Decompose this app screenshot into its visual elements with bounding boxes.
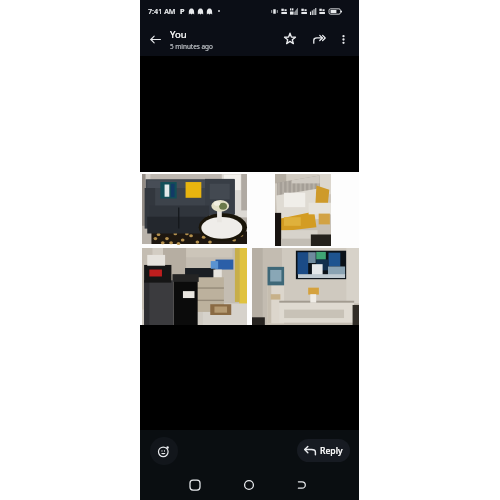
button[interactable]: Star	[280, 29, 300, 49]
staticText: P	[180, 6, 185, 16]
button[interactable]: Back	[292, 475, 312, 495]
button[interactable]	[140, 172, 359, 325]
button[interactable]: More options	[333, 29, 353, 49]
staticText: You	[170, 28, 187, 41]
button[interactable]: Reply	[297, 439, 350, 462]
staticText: 5 minutes ago	[170, 42, 213, 51]
staticText: Reply	[320, 445, 343, 457]
staticText: 7:41 AM	[148, 6, 176, 16]
button[interactable]: Home	[239, 475, 259, 495]
button[interactable]: Back	[144, 28, 166, 50]
button[interactable]: Recent apps	[185, 475, 205, 495]
button[interactable]: Add reaction	[150, 437, 178, 465]
button[interactable]: Forward	[309, 29, 329, 49]
